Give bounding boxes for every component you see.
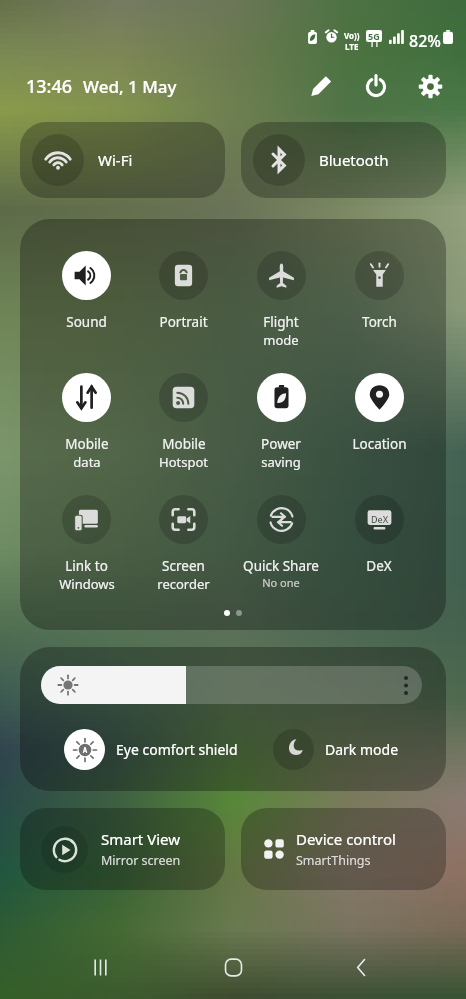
staticText: mode	[263, 331, 299, 348]
staticText: Location	[352, 435, 407, 453]
button[interactable]: Wi-Fi	[20, 122, 225, 198]
button[interactable]: Mobile	[38, 348, 135, 470]
staticText: Wed, 1 May	[83, 75, 177, 98]
button[interactable]: Power	[232, 348, 330, 470]
staticText: saving	[261, 453, 301, 470]
staticText: Smart View	[101, 829, 181, 849]
button[interactable]: Eye comfort shield	[64, 728, 238, 770]
button[interactable]: Location	[330, 348, 428, 453]
staticText: Dark mode	[325, 740, 399, 759]
button[interactable]: Bluetooth	[241, 122, 446, 198]
staticText: DeX	[371, 513, 389, 525]
staticText: 5G	[368, 30, 380, 42]
staticText: Torch	[362, 313, 397, 331]
staticText: 82%	[409, 30, 441, 52]
staticText: Windows	[59, 575, 115, 592]
button[interactable]: Device control	[241, 808, 446, 890]
staticText: LTE	[345, 41, 359, 52]
staticText: Device control	[296, 829, 396, 849]
button[interactable]: Smart View	[20, 808, 225, 890]
button[interactable]: Power	[356, 66, 396, 106]
staticText: Power	[261, 435, 301, 453]
button[interactable]: Dark mode	[273, 728, 399, 770]
button[interactable]: Settings	[410, 66, 450, 106]
button[interactable]: Screen	[135, 470, 232, 592]
button[interactable]: Link to	[38, 470, 135, 592]
staticText: Link to	[65, 557, 108, 575]
staticText: data	[73, 453, 101, 470]
button[interactable]: Edit	[301, 66, 341, 106]
staticText: Hotspot	[159, 453, 208, 470]
staticText: Eye comfort shield	[116, 740, 238, 759]
staticText: No one	[262, 575, 300, 590]
button[interactable]: Mobile	[135, 348, 232, 470]
button[interactable]: Quick Share	[232, 470, 330, 590]
staticText: Flight	[263, 313, 299, 331]
staticText: 13:46	[26, 74, 73, 99]
button[interactable]: Back	[329, 935, 393, 999]
button[interactable]: Brightness	[41, 666, 422, 704]
staticText: DeX	[366, 557, 392, 575]
button[interactable]: Portrait	[135, 226, 232, 331]
button[interactable]: Sound	[38, 226, 135, 331]
staticText: recorder	[157, 575, 210, 592]
button[interactable]: Flight	[232, 226, 330, 348]
button[interactable]: Home	[201, 935, 265, 999]
staticText: Portrait	[159, 313, 208, 331]
staticText: SmartThings	[296, 852, 371, 869]
button[interactable]: Recents	[68, 935, 132, 999]
staticText: Quick Share	[243, 557, 319, 575]
staticText: Bluetooth	[319, 150, 389, 170]
staticText: Wi-Fi	[98, 150, 133, 170]
button[interactable]: DeX	[330, 470, 428, 575]
staticText: Mobile	[65, 435, 109, 453]
staticText: Mirror screen	[101, 852, 181, 869]
button[interactable]: Torch	[330, 226, 428, 331]
staticText: Mobile	[162, 435, 206, 453]
staticText: Sound	[66, 313, 107, 331]
staticText: Screen	[162, 557, 205, 575]
staticText: Vo))	[344, 30, 360, 41]
